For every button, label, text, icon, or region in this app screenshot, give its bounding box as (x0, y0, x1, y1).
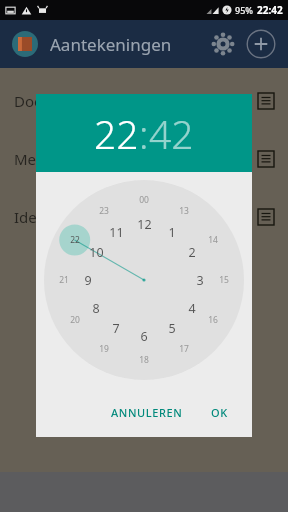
button[interactable]: 20 (60, 305, 90, 335)
button[interactable]: 10 (81, 237, 111, 267)
button[interactable]: 14 (198, 225, 228, 255)
staticText: 13 (179, 205, 189, 217)
staticText: 00 (139, 194, 149, 206)
staticText: 6 (140, 328, 148, 345)
staticText: 11 (109, 224, 124, 241)
staticText: OK (211, 405, 228, 420)
button[interactable]: 42 (149, 107, 194, 160)
button[interactable]: 15 (209, 265, 239, 295)
staticText: 95% (235, 4, 253, 16)
button[interactable]: 2 (177, 237, 207, 267)
staticText: 23 (99, 205, 109, 217)
staticText: ANNULEREN (111, 405, 183, 420)
staticText: 20 (70, 314, 80, 326)
staticText: 22 (94, 107, 139, 160)
staticText: 15 (219, 274, 229, 286)
button[interactable]: 16 (198, 305, 228, 335)
button[interactable]: Doe de boodschappen (0, 72, 288, 130)
button[interactable]: 12 (129, 209, 159, 239)
staticText: 7 (112, 320, 120, 337)
button[interactable]: Mee te nemen (0, 130, 288, 188)
button[interactable]: 23 (89, 196, 119, 226)
button[interactable]: 19 (89, 334, 119, 364)
button[interactable]: 13 (169, 196, 199, 226)
staticText: 3 (196, 272, 204, 289)
staticText: 18 (139, 354, 149, 366)
staticText: 12 (137, 216, 152, 233)
staticText: 19 (99, 343, 109, 355)
button[interactable]: 3 (185, 265, 215, 295)
staticText: 16 (208, 314, 218, 326)
staticText: 10 (89, 244, 104, 261)
button[interactable]: 22 (60, 225, 90, 255)
button[interactable]: 4 (177, 293, 207, 323)
button[interactable]: 1 (157, 217, 187, 247)
staticText: Mee te nemen (14, 149, 116, 169)
staticText: 9 (84, 272, 92, 289)
button[interactable]: 5 (157, 313, 187, 343)
button[interactable]: Ideeën (0, 188, 288, 246)
staticText: Doe de boodschappen (14, 91, 173, 111)
staticText: 42 (149, 107, 194, 160)
button[interactable]: 00 (129, 185, 159, 215)
button[interactable]: App icon (12, 31, 38, 57)
staticText: 14 (208, 234, 218, 246)
button[interactable]: 18 (129, 345, 159, 375)
button[interactable]: 9 (73, 265, 103, 295)
button[interactable]: OK (203, 399, 236, 426)
button[interactable]: 21 (49, 265, 79, 295)
button[interactable]: 17 (169, 334, 199, 364)
button[interactable]: ANNULEREN (103, 399, 191, 426)
button[interactable]: 11 (101, 217, 131, 247)
button[interactable]: 7 (101, 313, 131, 343)
staticText: 4 (188, 300, 196, 317)
staticText: 8 (92, 300, 100, 317)
staticText: 17 (179, 343, 189, 355)
staticText: 22:42 (257, 3, 283, 17)
staticText: 21 (59, 274, 69, 286)
button[interactable]: 22 (94, 107, 139, 160)
button[interactable]: 8 (81, 293, 111, 323)
staticText: 2 (188, 244, 196, 261)
staticText: Aantekeningen (50, 33, 172, 56)
staticText: 22 (70, 234, 80, 246)
button[interactable]: Settings (206, 27, 240, 61)
button[interactable]: 6 (129, 321, 159, 351)
staticText: Ideeën (14, 207, 63, 227)
staticText: 5 (168, 320, 176, 337)
staticText: : (139, 107, 149, 160)
button[interactable]: Add note (246, 29, 276, 59)
staticText: 1 (168, 224, 176, 241)
